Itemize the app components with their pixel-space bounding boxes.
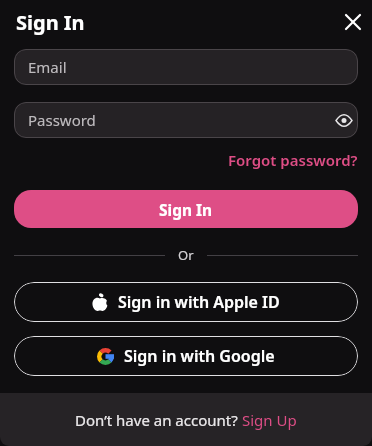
- staticText: Forgot password?: [228, 150, 358, 170]
- button[interactable]: Sign Up: [242, 410, 297, 430]
- button[interactable]: Sign in with Apple ID: [14, 282, 358, 322]
- staticText: Don’t have an account?: [75, 410, 242, 430]
- staticText: Sign in with Apple ID: [118, 291, 280, 313]
- button[interactable]: Sign In: [14, 190, 358, 228]
- staticText: Sign In: [16, 9, 85, 36]
- button[interactable]: [342, 11, 364, 33]
- button[interactable]: [333, 109, 355, 131]
- staticText: Or: [178, 246, 194, 264]
- button[interactable]: Password: [14, 102, 358, 138]
- staticText: Sign in with Google: [124, 345, 275, 367]
- button[interactable]: Email: [14, 49, 358, 85]
- staticText: Sign In: [159, 199, 213, 220]
- staticText: Sign Up: [242, 410, 297, 430]
- staticText: Password: [28, 110, 96, 130]
- button[interactable]: Forgot password?: [228, 150, 358, 170]
- button[interactable]: Sign in with Google: [14, 336, 358, 376]
- staticText: Email: [28, 57, 67, 77]
